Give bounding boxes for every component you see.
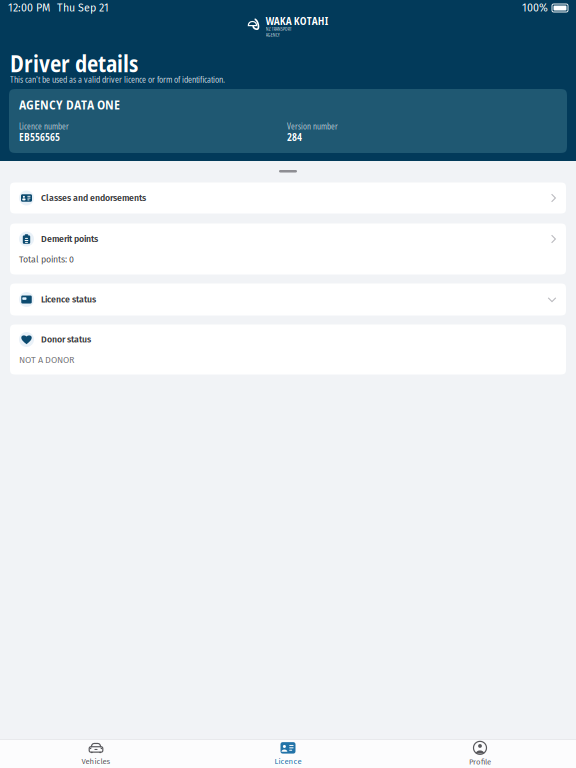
staticText: AGENCY DATA ONE (19, 96, 120, 113)
staticText: Licence number (19, 121, 69, 132)
staticText: NOT A DONOR (19, 355, 74, 365)
staticText: Version number (287, 121, 338, 132)
button[interactable]: Demerit points (0, 223, 576, 274)
button[interactable]: Licence (192, 738, 384, 768)
staticText: 12:00 PM (8, 2, 50, 14)
staticText: Profile (469, 757, 491, 767)
staticText: Total points: 0 (19, 254, 74, 265)
staticText: Licence (274, 757, 301, 766)
staticText: Thu Sep 21 (57, 2, 109, 14)
staticText: Vehicles (81, 757, 110, 766)
button[interactable]: Vehicles (0, 738, 192, 768)
button[interactable]: Licence status (0, 283, 576, 315)
button[interactable]: Profile (384, 737, 576, 768)
staticText: NZ TRANSPORT AGENCY (266, 26, 292, 38)
staticText: Classes and endorsements (41, 193, 146, 203)
staticText: This can't be used as a valid driver lic… (10, 74, 225, 85)
staticText: 100% (522, 2, 548, 14)
staticText: WAKA KOTAHI (266, 14, 329, 28)
staticText: 284 (287, 130, 302, 144)
staticText: EB556565 (19, 130, 60, 144)
staticText: Licence status (41, 294, 96, 305)
staticText: Donor status (41, 334, 91, 345)
staticText: Demerit points (41, 234, 98, 244)
staticText: Driver details (10, 48, 138, 79)
button[interactable]: Classes and endorsements (0, 182, 576, 213)
